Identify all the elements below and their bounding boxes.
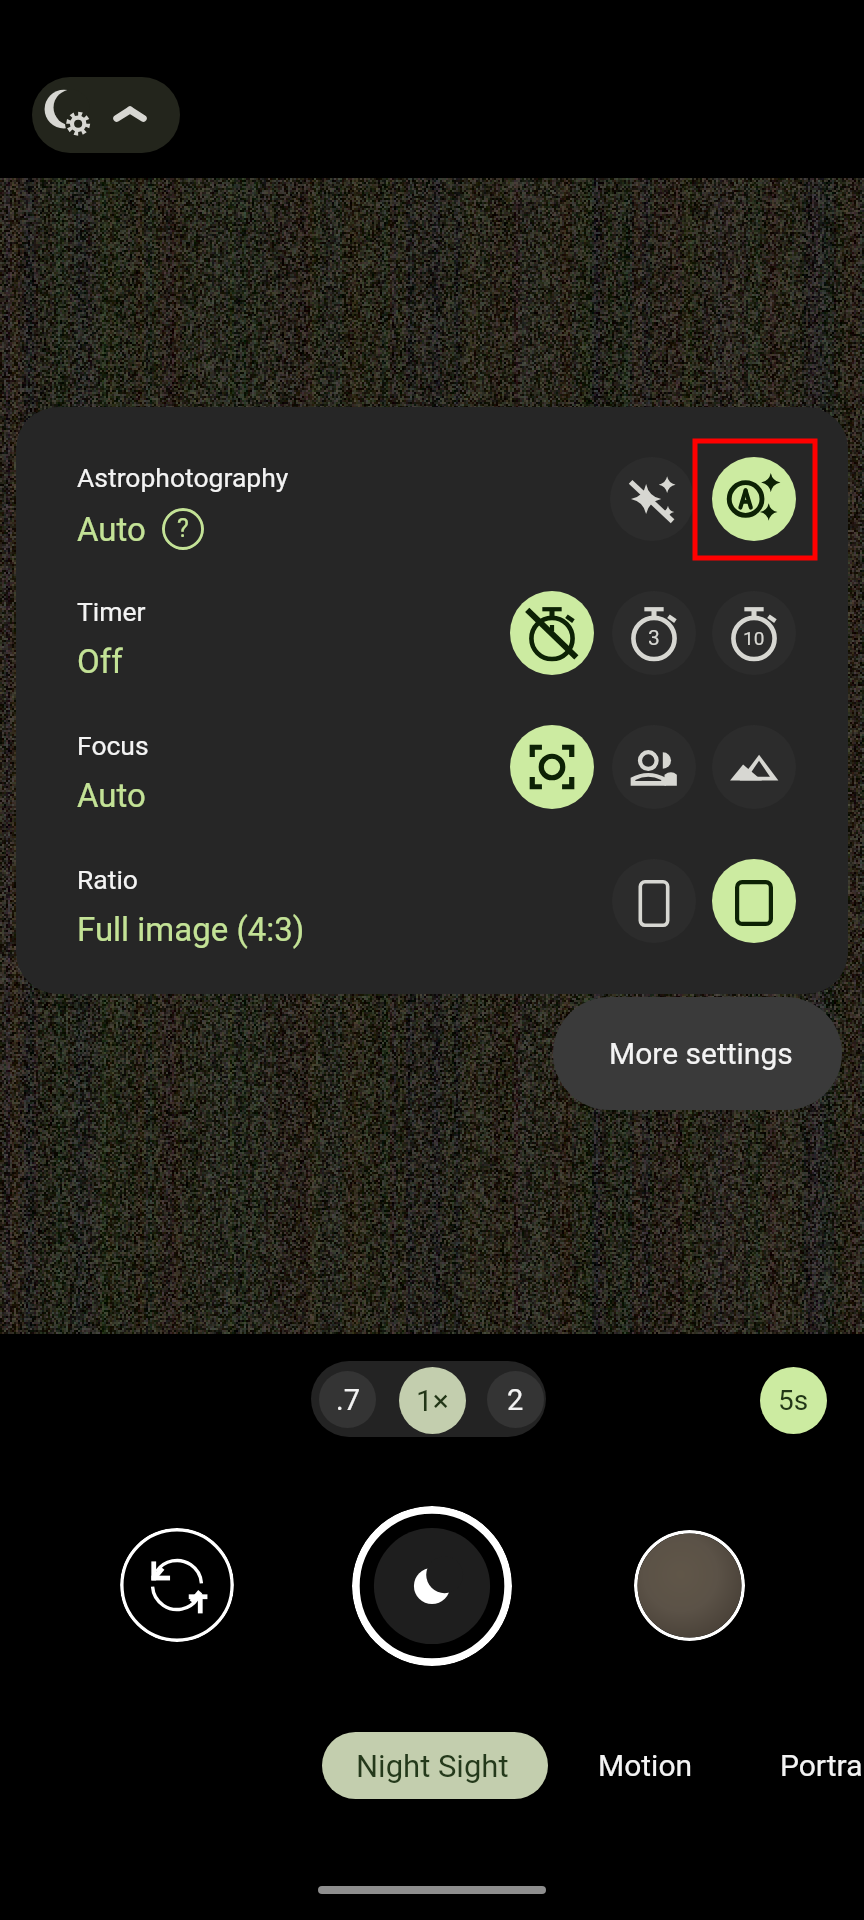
button[interactable]: 2 <box>487 1371 544 1428</box>
button[interactable]: Night mode settings <box>32 77 180 153</box>
button[interactable]: Motion <box>570 1732 720 1799</box>
button[interactable]: Portrait <box>780 1732 864 1799</box>
button[interactable]: Astrophotography auto <box>712 457 796 541</box>
staticText: Astrophotography <box>77 462 289 493</box>
button[interactable]: Timer 3 seconds <box>612 591 696 675</box>
staticText: 3 <box>648 626 660 651</box>
staticText: ? <box>177 514 189 543</box>
staticText: Off <box>77 642 123 681</box>
staticText: Auto <box>77 510 146 549</box>
staticText: 1× <box>416 1383 449 1418</box>
staticText: Night Sight <box>356 1748 509 1784</box>
button[interactable]: Ratio 4:3 <box>712 859 796 943</box>
staticText: Timer <box>77 596 146 627</box>
button[interactable]: Switch camera <box>120 1528 234 1642</box>
button[interactable]: 1× <box>399 1367 466 1434</box>
staticText: Motion <box>598 1748 693 1783</box>
button[interactable]: Astrophotography off <box>610 457 694 541</box>
staticText: Focus <box>77 730 149 761</box>
staticText: More settings <box>609 1036 793 1071</box>
staticText: 2 <box>507 1383 524 1417</box>
button[interactable]: 5s <box>760 1367 827 1434</box>
button[interactable]: Focus people <box>612 725 696 809</box>
staticText: .7 <box>336 1383 360 1417</box>
staticText: 10 <box>743 627 765 649</box>
button[interactable]: Timer 10 seconds <box>712 591 796 675</box>
staticText: 5s <box>778 1384 809 1417</box>
button[interactable]: Shutter <box>352 1506 512 1666</box>
staticText: Portrait <box>780 1748 864 1783</box>
button[interactable]: Gallery <box>634 1530 745 1641</box>
button[interactable]: Ratio 9:16 <box>612 859 696 943</box>
button[interactable]: More settings <box>553 997 842 1110</box>
button[interactable]: Focus landscape <box>712 725 796 809</box>
staticText: Ratio <box>77 864 138 895</box>
button[interactable]: Focus auto <box>510 725 594 809</box>
button[interactable]: Night Sight <box>322 1732 548 1799</box>
button[interactable]: .7 <box>319 1371 376 1428</box>
button[interactable]: Timer off <box>510 591 594 675</box>
staticText: Full image (4:3) <box>77 910 305 949</box>
button[interactable]: Help <box>162 508 204 550</box>
staticText: Auto <box>77 776 146 815</box>
